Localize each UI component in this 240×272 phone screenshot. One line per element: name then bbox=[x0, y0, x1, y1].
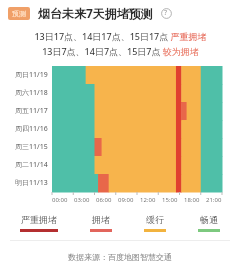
staticText: 畅通 bbox=[200, 214, 218, 225]
button[interactable]: 缓行 bbox=[144, 214, 166, 232]
staticText: 03:00 bbox=[74, 196, 90, 204]
staticText: 06:00 bbox=[96, 196, 112, 204]
staticText: 18:00 bbox=[184, 196, 200, 204]
button[interactable]: 拥堵 bbox=[90, 214, 112, 232]
staticText: 周六11/18 bbox=[15, 88, 48, 98]
staticText: 12:00 bbox=[140, 196, 156, 204]
button[interactable]: 帮助说明 bbox=[159, 6, 173, 20]
staticText: 缓行 bbox=[146, 214, 164, 225]
staticText: 周二11/14 bbox=[15, 160, 48, 170]
staticText: 13日7点、14日7点、15日7点 较为拥堵 bbox=[42, 45, 199, 57]
staticText: 09:00 bbox=[118, 196, 134, 204]
staticText: 21:00 bbox=[206, 196, 222, 204]
staticText: 烟台未来7天拥堵预测 bbox=[38, 5, 153, 21]
button[interactable]: 畅通 bbox=[198, 214, 220, 232]
staticText: 00:00 bbox=[52, 196, 68, 204]
staticText: 严重拥堵 bbox=[21, 214, 57, 225]
button[interactable]: 预测 bbox=[8, 7, 30, 20]
staticText: 周四11/16 bbox=[15, 124, 48, 134]
staticText: ? bbox=[164, 8, 168, 18]
staticText: 预测 bbox=[12, 9, 26, 18]
button[interactable]: 严重拥堵 bbox=[20, 214, 58, 232]
staticText: 数据来源：百度地图智慧交通 bbox=[68, 252, 172, 262]
staticText: 13日17点、14日17点、15日17点 严重拥堵 bbox=[34, 30, 207, 42]
staticText: 拥堵 bbox=[92, 214, 110, 225]
staticText: 15:00 bbox=[162, 196, 178, 204]
staticText: 明日11/13 bbox=[15, 178, 48, 188]
staticText: 周五11/17 bbox=[15, 106, 48, 116]
staticText: 周三11/15 bbox=[15, 142, 48, 152]
staticText: 周日11/19 bbox=[15, 70, 48, 80]
